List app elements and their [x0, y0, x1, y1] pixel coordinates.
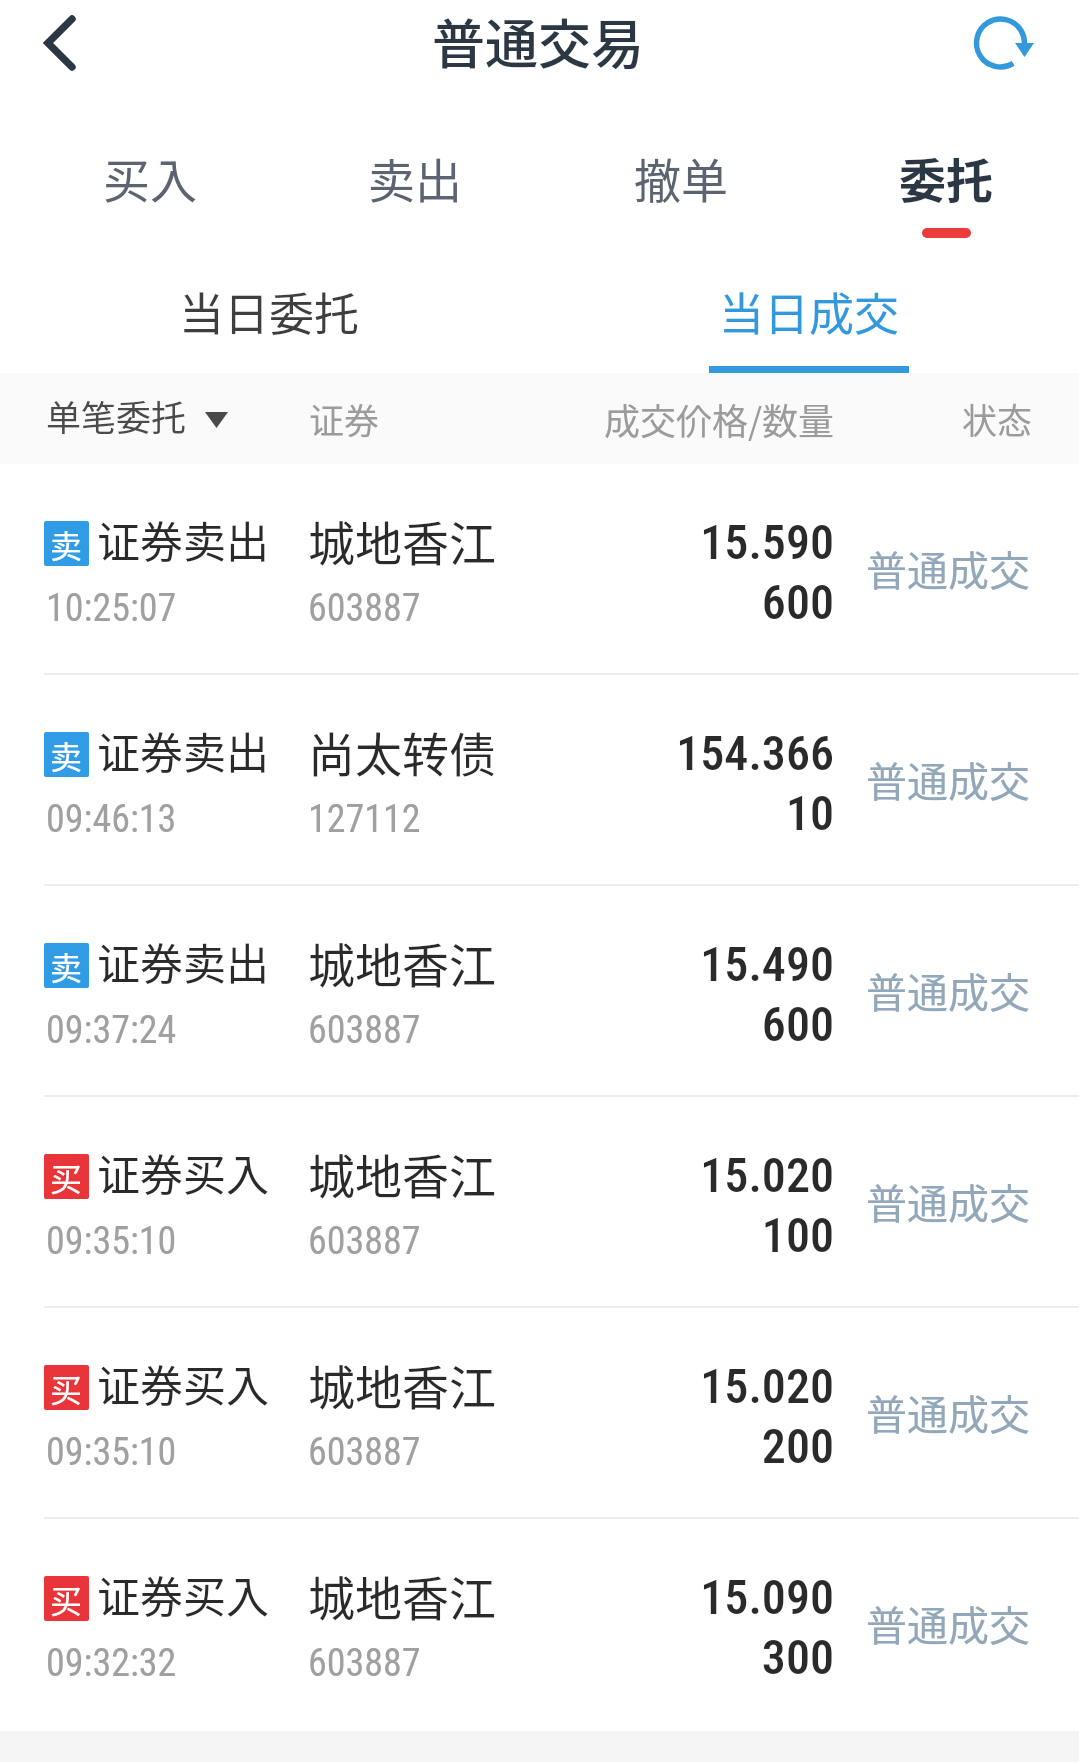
- button[interactable]: 当日成交: [629, 250, 989, 373]
- staticText: 普通成交: [866, 1593, 1030, 1652]
- staticText: 200: [761, 1418, 834, 1474]
- button[interactable]: 当日委托: [89, 250, 449, 373]
- staticText: 600: [761, 996, 834, 1052]
- button[interactable]: 卖: [0, 464, 1079, 675]
- staticText: 09:46:13: [46, 797, 177, 842]
- staticText: 证券买入: [97, 1141, 269, 1203]
- staticText: 154.366: [676, 725, 834, 781]
- staticText: 撤单: [634, 143, 728, 211]
- button[interactable]: 买: [0, 1519, 1079, 1730]
- button[interactable]: 卖出: [315, 110, 515, 250]
- staticText: 普通成交: [866, 538, 1030, 597]
- staticText: 603887: [308, 1219, 421, 1264]
- staticText: 当日委托: [179, 279, 360, 344]
- button[interactable]: 买: [0, 1308, 1079, 1519]
- staticText: 城地香江: [308, 1561, 496, 1629]
- staticText: 普通交易: [432, 3, 644, 80]
- staticText: 单笔委托: [46, 390, 187, 441]
- staticText: 当日成交: [719, 279, 900, 344]
- staticText: 09:35:10: [46, 1430, 177, 1475]
- staticText: 状态: [962, 393, 1033, 444]
- staticText: 普通成交: [866, 1171, 1030, 1230]
- button[interactable]: 单笔委托: [28, 373, 246, 464]
- staticText: 证券卖出: [97, 930, 269, 992]
- staticText: 城地香江: [308, 928, 496, 996]
- staticText: 卖: [50, 943, 83, 988]
- button[interactable]: 卖: [0, 886, 1079, 1097]
- staticText: 10:25:07: [46, 586, 177, 631]
- staticText: 城地香江: [308, 1350, 496, 1418]
- staticText: 普通成交: [866, 749, 1030, 808]
- staticText: 600: [761, 574, 834, 630]
- staticText: 15.490: [700, 936, 834, 992]
- staticText: 15.590: [700, 514, 834, 570]
- staticText: 买: [50, 1365, 83, 1410]
- staticText: 100: [761, 1207, 834, 1263]
- staticText: 15.020: [700, 1358, 834, 1414]
- staticText: 证券卖出: [97, 719, 269, 781]
- staticText: 城地香江: [308, 1139, 496, 1207]
- button[interactable]: Refresh: [947, 0, 1079, 88]
- staticText: 普通成交: [866, 960, 1030, 1019]
- button[interactable]: 撤单: [581, 110, 781, 250]
- staticText: 127112: [308, 797, 421, 842]
- staticText: 城地香江: [308, 506, 496, 574]
- staticText: 证券买入: [97, 1563, 269, 1625]
- button[interactable]: 卖: [0, 675, 1079, 886]
- button[interactable]: 委托: [846, 110, 1046, 250]
- staticText: 卖: [50, 732, 83, 777]
- staticText: 603887: [308, 1641, 421, 1686]
- staticText: 603887: [308, 586, 421, 631]
- staticText: 买: [50, 1154, 83, 1199]
- staticText: 证券卖出: [97, 508, 269, 570]
- staticText: 09:35:10: [46, 1219, 177, 1264]
- staticText: 卖出: [368, 143, 462, 211]
- staticText: 卖: [50, 521, 83, 566]
- button[interactable]: 买: [0, 1097, 1079, 1308]
- staticText: 普通成交: [866, 1382, 1030, 1441]
- staticText: 15.090: [700, 1569, 834, 1625]
- staticText: 尚太转债: [308, 717, 496, 785]
- button[interactable]: Back: [0, 0, 132, 88]
- staticText: 15.020: [700, 1147, 834, 1203]
- staticText: 10: [785, 785, 834, 841]
- staticText: 买入: [103, 143, 197, 211]
- staticText: 09:37:24: [46, 1008, 177, 1053]
- staticText: 603887: [308, 1008, 421, 1053]
- staticText: 委托: [899, 143, 993, 211]
- staticText: 证券: [309, 393, 380, 444]
- staticText: 603887: [308, 1430, 421, 1475]
- button[interactable]: 买入: [50, 110, 250, 250]
- staticText: 09:32:32: [46, 1641, 177, 1686]
- staticText: 证券买入: [97, 1352, 269, 1414]
- staticText: 成交价格/数量: [604, 393, 835, 445]
- staticText: 300: [761, 1629, 834, 1685]
- staticText: 买: [50, 1576, 83, 1621]
